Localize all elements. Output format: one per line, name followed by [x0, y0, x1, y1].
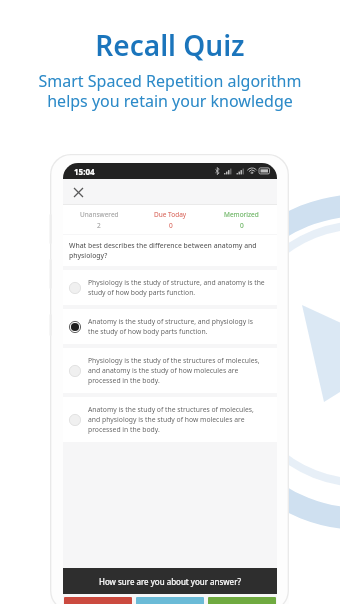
staticText: What best describes the difference betwe… — [69, 241, 271, 260]
button[interactable]: Anatomy is the study of the structures o… — [63, 397, 277, 442]
button[interactable]: Close — [69, 183, 87, 201]
staticText: How sure are you about your answer? — [99, 576, 241, 587]
staticText: Due Today — [154, 210, 187, 219]
button[interactable]: Unanswered — [63, 210, 135, 230]
staticText: 0 — [169, 221, 173, 230]
staticText: 15:04 — [74, 166, 95, 177]
button[interactable]: Memorized — [206, 210, 277, 230]
staticText: 0 — [240, 221, 244, 230]
staticText: 2 — [97, 221, 101, 230]
staticText: Anatomy is the study of structure, and p… — [88, 317, 265, 336]
staticText: Anatomy is the study of the structures o… — [88, 405, 265, 434]
staticText: Memorized — [224, 210, 259, 219]
button[interactable]: Physiology is the study of the structure… — [63, 348, 277, 393]
staticText: Recall Quiz — [0, 26, 340, 64]
staticText: Unanswered — [80, 210, 119, 219]
staticText: Smart Spaced Repetition algorithm helps … — [0, 70, 340, 111]
staticText: Physiology is the study of structure, an… — [88, 278, 265, 297]
button[interactable]: Anatomy is the study of structure, and p… — [63, 309, 277, 344]
button[interactable]: Physiology is the study of structure, an… — [63, 270, 277, 305]
button[interactable]: Due Today — [135, 210, 206, 230]
staticText: Physiology is the study of the structure… — [88, 356, 265, 385]
